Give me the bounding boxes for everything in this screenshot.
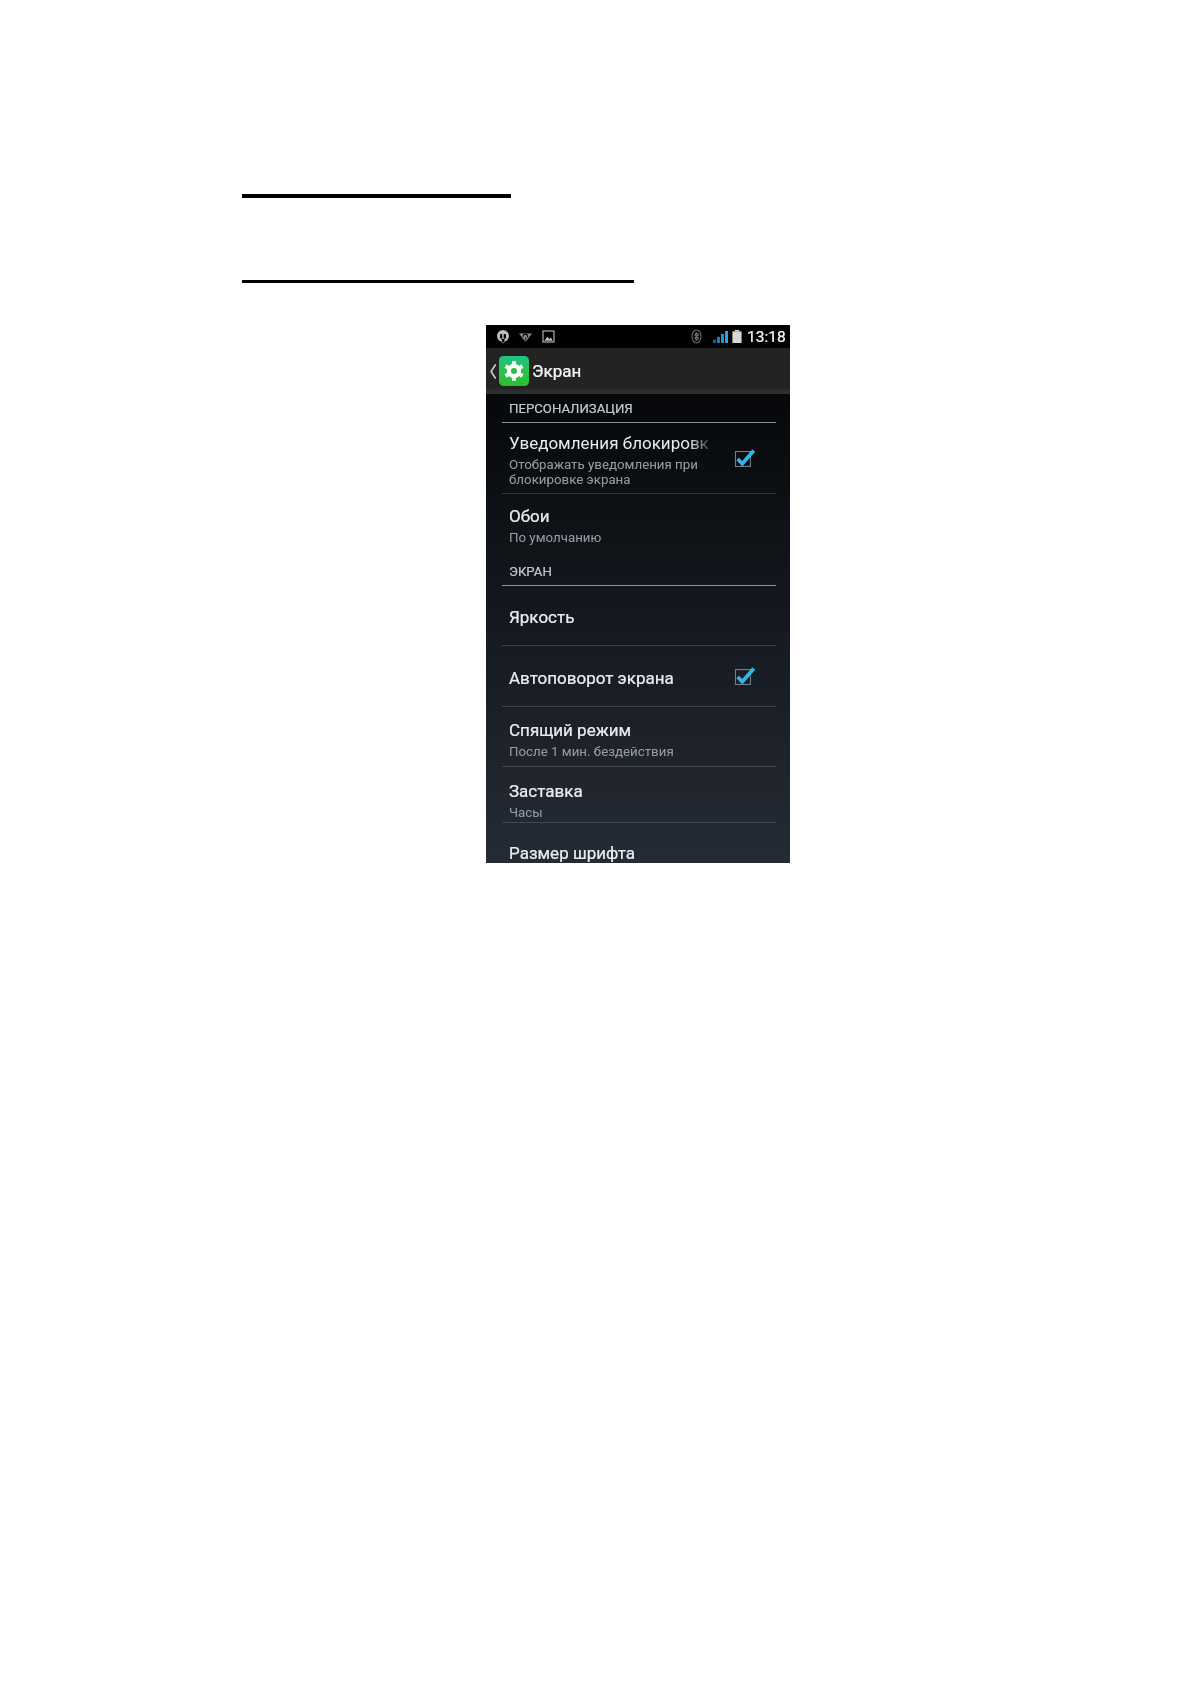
button[interactable]: Назад [490,365,496,378]
button[interactable]: Уведомления блокировк [486,423,790,493]
staticText: Обои [509,506,550,526]
button[interactable]: Спящий режим [486,707,790,766]
button[interactable]: Экран [499,348,592,394]
staticText: 13:18 [747,328,786,346]
button[interactable]: Обои [486,494,790,556]
button[interactable]: Автоповорот экрана [486,646,790,706]
staticText: Спящий режим [509,720,632,740]
staticText: Автоповорот экрана [509,668,674,688]
staticText: Размер шрифта [509,843,635,863]
staticText: Яркость [509,607,575,627]
staticText: ЭКРАН [509,564,552,579]
button[interactable]: Заставка [486,767,790,822]
staticText: Заставка [509,781,583,801]
button[interactable]: Размер шрифта [486,823,790,863]
staticText: ПЕРСОНАЛИЗАЦИЯ [509,401,633,416]
staticText: Экран [532,361,582,381]
staticText: По умолчанию [509,530,602,546]
staticText: После 1 мин. бездействия [509,744,674,760]
staticText: Отображать уведомления при блокировке эк… [509,457,698,487]
staticText: Уведомления блокировк [509,433,709,453]
button[interactable]: Яркость [486,586,790,645]
staticText: Часы [509,805,543,821]
